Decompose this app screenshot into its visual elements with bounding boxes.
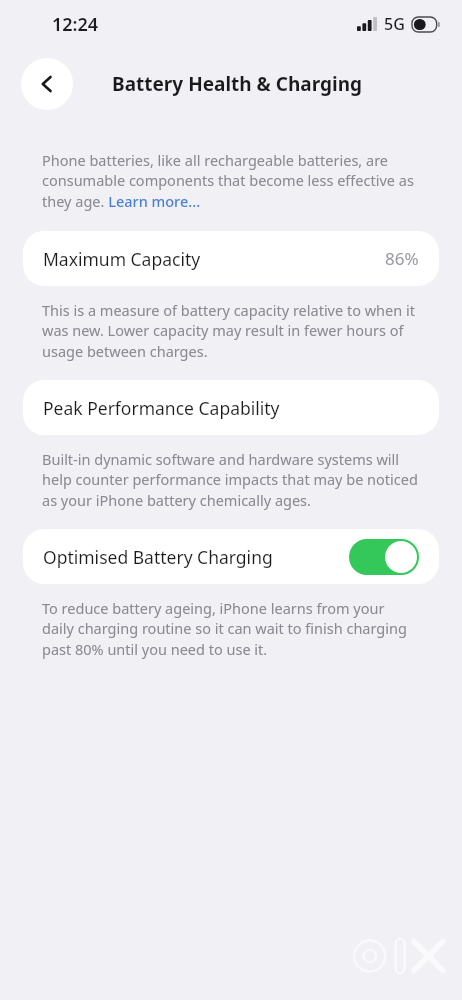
button[interactable]: Back bbox=[21, 58, 73, 110]
button[interactable]: Optimised Battery Charging bbox=[23, 529, 439, 584]
staticText: 5G bbox=[384, 13, 405, 35]
staticText: 86% bbox=[385, 247, 419, 270]
staticText: Optimised Battery Charging bbox=[43, 545, 273, 569]
staticText: Built-in dynamic software and hardware s… bbox=[42, 449, 420, 511]
button[interactable]: Optimised Battery Charging toggle, on bbox=[349, 539, 419, 575]
staticText: Phone batteries, like all rechargeable b… bbox=[42, 150, 420, 212]
staticText: 12:24 bbox=[52, 12, 99, 37]
staticText: Peak Performance Capability bbox=[43, 396, 280, 420]
button[interactable]: Peak Performance Capability bbox=[23, 380, 439, 435]
staticText: Battery Health & Charging bbox=[112, 71, 363, 97]
staticText: Maximum Capacity bbox=[43, 247, 201, 271]
button[interactable]: Maximum Capacity bbox=[23, 231, 439, 286]
staticText: To reduce battery ageing, iPhone learns … bbox=[42, 598, 420, 660]
staticText: This is a measure of battery capacity re… bbox=[42, 300, 420, 362]
